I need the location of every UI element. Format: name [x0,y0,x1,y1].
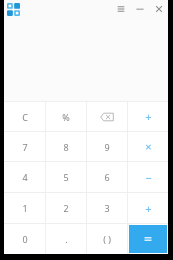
button[interactable]: 2 [46,193,86,223]
button[interactable]: − [128,162,168,192]
button[interactable]: Backspace [87,102,127,131]
staticText: C [22,111,28,123]
button[interactable]: App icon [6,2,21,17]
button[interactable]: % [46,102,86,131]
button[interactable]: 9 [87,132,127,161]
button[interactable]: + [128,102,168,131]
staticText: 8 [63,141,69,153]
staticText: + [145,201,152,216]
staticText: 7 [22,141,28,153]
staticText: 3 [104,202,110,214]
staticText: 0 [22,233,28,245]
staticText: % [62,111,70,123]
staticText: 9 [104,141,110,153]
button[interactable]: Equals [129,225,167,253]
button[interactable]: 0 [4,224,45,254]
button[interactable]: 6 [87,162,127,192]
staticText: 2 [63,202,69,214]
staticText: + [145,109,152,124]
button[interactable]: Close [152,2,166,16]
staticText: × [145,139,152,154]
staticText: 5 [63,171,69,183]
staticText: 6 [104,171,110,183]
staticText: ( ) [103,233,111,245]
staticText: . [65,233,68,245]
staticText: − [145,170,152,185]
staticText: 4 [22,171,28,183]
button[interactable]: C [4,102,45,131]
staticText: 1 [22,202,28,214]
button[interactable]: 1 [4,193,45,223]
button[interactable]: 5 [46,162,86,192]
button[interactable]: 4 [4,162,45,192]
button[interactable]: 8 [46,132,86,161]
button[interactable]: 3 [87,193,127,223]
button[interactable]: . [46,224,86,254]
button[interactable]: ( ) [87,224,127,254]
button[interactable]: Minimize [133,2,147,16]
button[interactable]: 7 [4,132,45,161]
button[interactable]: Menu [114,2,128,16]
button[interactable]: × [128,132,168,161]
button[interactable]: + [128,193,168,223]
